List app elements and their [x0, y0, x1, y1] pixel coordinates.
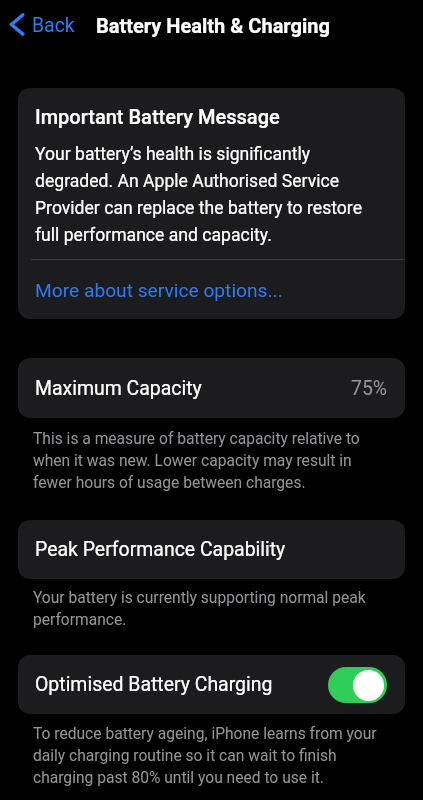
staticText: To reduce battery ageing, iPhone learns … — [33, 725, 390, 787]
button[interactable]: Maximum Capacity — [18, 358, 405, 418]
staticText: This is a measure of battery capacity re… — [33, 430, 390, 492]
staticText: More about service options... — [35, 279, 283, 302]
staticText: Your battery is currently supporting nor… — [33, 589, 390, 629]
button[interactable]: Peak Performance Capability — [18, 520, 405, 579]
staticText: 75% — [351, 377, 388, 400]
staticText: Your battery’s health is significantly d… — [35, 144, 383, 245]
button[interactable]: Optimised Battery Charging toggle — [328, 667, 387, 703]
staticText: Maximum Capacity — [35, 377, 202, 400]
button[interactable]: More about service options... — [18, 260, 405, 316]
staticText: Optimised Battery Charging — [35, 673, 273, 696]
staticText: Peak Performance Capability — [35, 538, 286, 561]
staticText: Back — [32, 14, 75, 37]
button[interactable]: Back — [0, 6, 83, 45]
staticText: Battery Health & Charging — [96, 14, 330, 37]
staticText: Important Battery Message — [35, 105, 280, 128]
